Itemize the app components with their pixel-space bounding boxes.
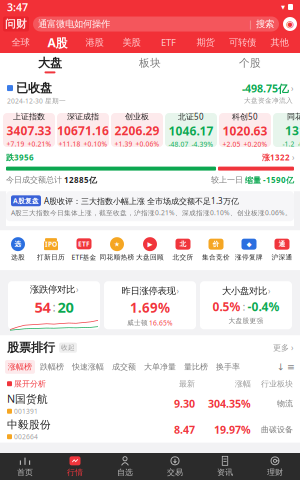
button[interactable]: 美股 — [113, 34, 150, 51]
button[interactable]: 昨日涨停表现 — [104, 281, 196, 329]
button[interactable]: 自选 — [100, 453, 150, 480]
staticText: ETF — [161, 36, 176, 49]
staticText: 20 — [57, 297, 73, 317]
button[interactable]: 跌幅榜 — [37, 360, 67, 374]
button[interactable]: 深证成指 — [57, 113, 109, 147]
staticText: 物流 — [277, 399, 293, 408]
button[interactable]: 通 — [265, 236, 298, 262]
button[interactable]: 板块 — [100, 53, 200, 76]
staticText: 搜索 — [253, 18, 274, 30]
staticText: 通富微电如何操作 — [38, 18, 110, 30]
staticText: ▶ — [147, 240, 152, 248]
button[interactable]: 可转债 — [224, 34, 261, 51]
button[interactable]: IPO — [34, 236, 67, 262]
staticText: › — [290, 152, 294, 163]
staticText: 已收盘 — [16, 81, 52, 95]
button[interactable]: ▶ — [133, 236, 166, 262]
staticText: 更多 › — [273, 342, 293, 353]
staticText: 其他 — [270, 37, 288, 48]
button[interactable]: 量比榜 — [181, 360, 211, 374]
button[interactable]: 行情 — [50, 453, 100, 480]
button[interactable]: 个股 — [200, 53, 300, 76]
staticText: A股复盘 — [13, 196, 39, 205]
staticText: 期货 — [196, 37, 214, 48]
button[interactable]: 大小盘对比 — [200, 281, 292, 329]
button[interactable]: 价 — [199, 236, 232, 262]
staticText: ◉ — [286, 19, 294, 29]
staticText: 涨幅榜 — [8, 362, 32, 372]
staticText: 16.65% — [149, 318, 173, 327]
button[interactable]: 快速涨幅 — [69, 360, 107, 374]
button[interactable]: 北 — [166, 236, 199, 262]
button[interactable]: 其他 — [261, 34, 298, 51]
button[interactable]: 换手率 — [213, 360, 243, 374]
staticText: 深证成指 — [67, 112, 99, 121]
button[interactable]: 大单净量 — [141, 360, 179, 374]
staticText: 上证指数 — [13, 112, 45, 121]
staticText: -0.1% — [297, 139, 300, 148]
button[interactable]: 全球 — [2, 34, 39, 51]
staticText: 沪深通 — [271, 253, 292, 261]
staticText: 换手率 — [216, 362, 240, 372]
staticText: A股 — [47, 34, 67, 50]
staticText: 1020.63 — [222, 123, 267, 139]
staticText: ★ — [114, 240, 120, 248]
staticText: 可转债 — [229, 37, 256, 48]
staticText: 2024-12-30 星期一 — [7, 96, 66, 105]
staticText: 涨1322 — [262, 152, 290, 163]
button[interactable]: 中毅股份 — [0, 417, 300, 443]
staticText: › — [291, 83, 293, 94]
staticText: 北交所 — [172, 253, 193, 261]
button[interactable]: ETF — [150, 34, 187, 51]
staticText: 2206.29 — [114, 122, 159, 138]
staticText: 个股 — [239, 56, 261, 69]
button[interactable]: 成交额 — [109, 360, 139, 374]
button[interactable]: ◆ — [232, 236, 265, 262]
staticText: : — [242, 300, 245, 314]
button[interactable]: 大盘 — [0, 53, 100, 76]
staticText: 展开分析 — [14, 379, 46, 389]
button[interactable]: 资讯 — [200, 453, 250, 480]
staticText: 002664 — [14, 432, 38, 441]
staticText: 打新日历 — [37, 253, 65, 261]
staticText: 最新 — [179, 379, 195, 389]
staticText: : — [52, 299, 55, 315]
button[interactable]: ETF — [67, 236, 100, 262]
button[interactable]: A股复盘 — [6, 191, 294, 221]
staticText: ≡ — [287, 362, 295, 372]
button[interactable]: 涨幅榜 — [5, 360, 35, 374]
staticText: A股三大指数今日集体上涨，截至收盘，沪指涨0.21%、深成指涨0.10%、创业板… — [11, 208, 292, 217]
staticText: 1312 — [285, 122, 300, 138]
staticText: 跌3956 — [6, 152, 34, 163]
staticText: 304.35% — [208, 397, 251, 411]
staticText: ETF基金 — [71, 253, 96, 262]
button[interactable]: 上证指数 — [3, 113, 55, 147]
button[interactable]: 期货 — [187, 34, 224, 51]
staticText: 股票排行 — [7, 340, 55, 355]
staticText: 大小盘对比 — [222, 285, 267, 297]
staticText: N国货航 — [7, 392, 48, 406]
button[interactable]: 涨跌停对比 — [8, 281, 100, 329]
button[interactable]: 首页 — [0, 453, 50, 480]
button[interactable]: 北证50 — [165, 113, 217, 147]
staticText: 选 — [14, 240, 21, 248]
button[interactable]: 港股 — [76, 34, 113, 51]
staticText: 9.30 — [174, 397, 195, 411]
button[interactable]: 科创50 — [219, 113, 271, 147]
staticText: -4.39% — [191, 140, 213, 149]
staticText: 大单净量 — [144, 362, 176, 372]
staticText: 集合竞价 — [202, 253, 230, 261]
button[interactable]: N国货航 — [0, 391, 300, 417]
staticText: 1.69% — [130, 299, 170, 316]
button[interactable]: 同花顺 — [273, 113, 300, 147]
staticText: 3:47 — [7, 0, 28, 14]
button[interactable]: ★ — [100, 236, 133, 262]
button[interactable]: 选 — [1, 236, 34, 262]
staticText: 19.97% — [214, 423, 251, 437]
button[interactable]: 理财 — [250, 453, 300, 480]
button[interactable]: 创业板 — [111, 113, 163, 147]
button[interactable]: A股 — [39, 34, 76, 51]
button[interactable]: 交易 — [150, 453, 200, 480]
staticText: 港股 — [85, 37, 103, 48]
staticText: 同花顺热榜 — [99, 253, 134, 261]
